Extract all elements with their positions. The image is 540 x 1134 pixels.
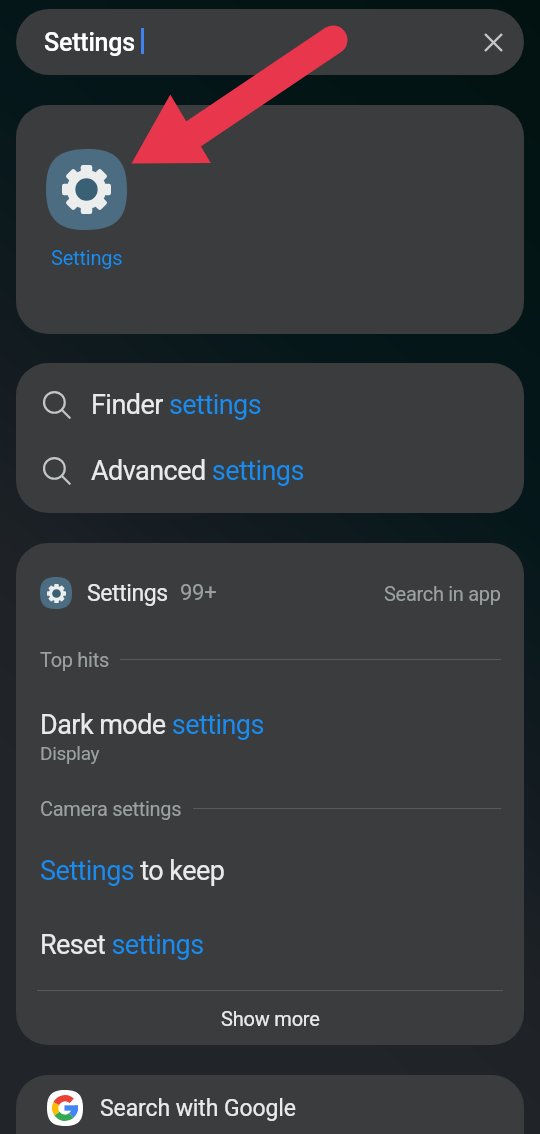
staticText: Reset settings: [40, 929, 204, 961]
button[interactable]: Reset settings: [16, 926, 524, 967]
staticText: Top hits: [40, 648, 109, 671]
button[interactable]: Dark mode settings: [16, 706, 524, 770]
button[interactable]: Settings: [16, 9, 524, 75]
button[interactable]: Settings: [36, 139, 137, 279]
staticText: Show more: [221, 1007, 320, 1030]
button[interactable]: Settings to keep: [16, 852, 524, 893]
staticText: Finder settings: [91, 389, 262, 421]
staticText: Display: [40, 742, 100, 764]
staticText: Settings: [44, 28, 135, 57]
button[interactable]: Show more: [16, 991, 524, 1045]
button[interactable]: Search in app: [384, 582, 501, 605]
button[interactable]: Search with Google: [16, 1075, 524, 1134]
button[interactable]: Finder settings: [16, 372, 524, 438]
staticText: Settings: [51, 246, 123, 269]
button[interactable]: Advanced settings: [16, 438, 524, 504]
staticText: Camera settings: [40, 797, 182, 820]
staticText: Advanced settings: [91, 455, 304, 487]
staticText: Settings: [87, 580, 168, 607]
staticText: Search with Google: [100, 1095, 296, 1122]
staticText: 99+: [180, 580, 217, 606]
staticText: Search in app: [384, 582, 501, 605]
staticText: Dark mode settings: [40, 709, 264, 741]
staticText: Settings to keep: [40, 855, 225, 887]
button[interactable]: Clear search: [471, 20, 515, 64]
